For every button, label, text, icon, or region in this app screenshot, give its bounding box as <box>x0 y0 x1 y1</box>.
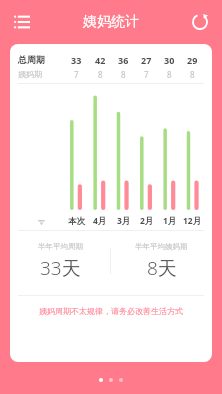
button[interactable]: 2月 <box>135 215 158 227</box>
staticText: 7 <box>144 69 149 80</box>
staticText: 8 <box>121 69 126 80</box>
staticText: 姨妈统计 <box>83 13 139 31</box>
staticText: 1月 <box>163 215 177 227</box>
staticText: 8 <box>98 69 103 80</box>
staticText: 33 <box>71 54 82 66</box>
staticText: 30 <box>164 54 175 66</box>
button[interactable]: 1月 <box>158 215 181 227</box>
staticText: 42 <box>95 54 106 66</box>
button[interactable]: Page 3 <box>119 378 123 382</box>
staticText: 姨妈期 <box>18 69 42 79</box>
staticText: 7 <box>74 69 79 80</box>
staticText: 8 <box>190 69 195 80</box>
staticText: 总周期 <box>18 54 45 65</box>
button[interactable]: 半年平均周期 <box>10 242 110 281</box>
button[interactable]: Menu <box>6 6 38 38</box>
staticText: 3月 <box>117 215 131 227</box>
button[interactable]: 4月 <box>88 215 112 227</box>
staticText: 29 <box>187 54 198 66</box>
staticText: 2月 <box>140 215 154 227</box>
button[interactable]: Refresh <box>184 6 216 38</box>
button[interactable]: 3月 <box>112 215 135 227</box>
button[interactable]: 本次 <box>64 216 88 227</box>
staticText: 8天 <box>147 255 177 281</box>
button[interactable]: 半年平均姨妈期 <box>111 242 212 281</box>
button[interactable]: Page 2 <box>109 378 113 382</box>
button[interactable]: Page 1 <box>99 378 103 382</box>
staticText: 姨妈周期不太规律，请务必改善生活方式 <box>39 306 183 316</box>
staticText: 27 <box>141 54 152 66</box>
staticText: 12月 <box>183 215 202 227</box>
staticText: 半年平均姨妈期 <box>135 242 188 251</box>
button[interactable]: 12月 <box>181 215 204 227</box>
staticText: 36 <box>118 54 129 66</box>
staticText: 本次 <box>68 216 85 227</box>
staticText: 半年平均周期 <box>38 242 83 251</box>
staticText: 33天 <box>40 255 81 281</box>
staticText: 4月 <box>93 215 107 227</box>
staticText: 8 <box>167 69 172 80</box>
